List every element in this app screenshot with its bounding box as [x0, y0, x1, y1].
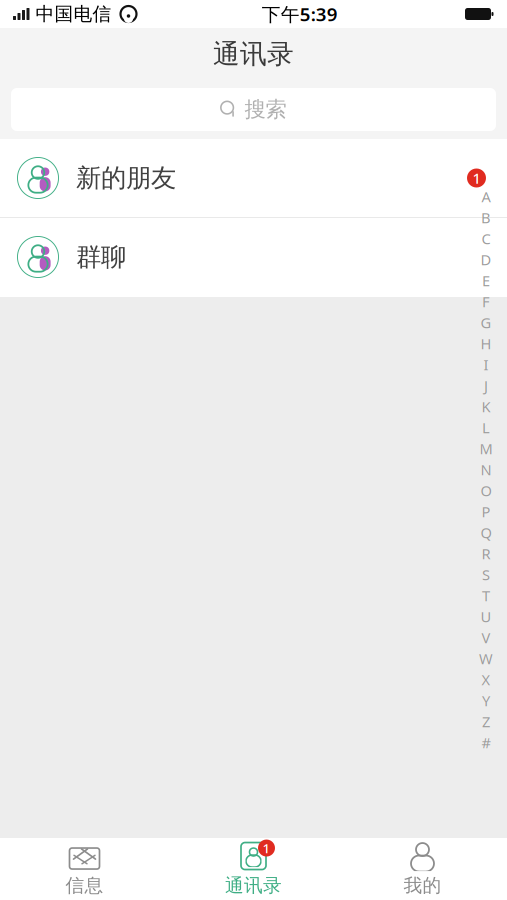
button[interactable]: 我的 [338, 839, 507, 899]
staticText: G [480, 313, 491, 332]
staticText: 群聊 [76, 241, 126, 272]
staticText: 1 [262, 839, 270, 857]
staticText: N [480, 460, 491, 479]
button[interactable]: 新的朋友 [0, 139, 507, 218]
staticText: R [481, 544, 490, 563]
staticText: Q [480, 523, 491, 542]
staticText: 搜索 [244, 96, 286, 123]
staticText: B [481, 208, 491, 227]
staticText: T [482, 586, 490, 605]
staticText: A [481, 187, 490, 206]
staticText: U [480, 607, 491, 626]
staticText: J [484, 376, 488, 395]
staticText: K [481, 397, 490, 416]
staticText: W [479, 649, 493, 668]
staticText: 通讯录 [225, 874, 282, 897]
staticText: F [482, 292, 490, 311]
staticText: D [480, 250, 491, 269]
staticText: L [482, 418, 490, 437]
staticText: 信息 [65, 874, 103, 897]
button[interactable]: 群聊 [0, 218, 507, 297]
button[interactable]: 1 [169, 839, 338, 899]
staticText: S [482, 565, 490, 584]
staticText: 新的朋友 [76, 162, 176, 193]
staticText: H [480, 334, 491, 353]
staticText: E [482, 271, 490, 290]
staticText: 中国电信 [35, 2, 111, 25]
staticText: P [481, 502, 490, 521]
button[interactable]: 信息 [0, 839, 169, 899]
staticText: 我的 [403, 874, 441, 897]
staticText: O [480, 481, 491, 500]
staticText: 通讯录 [213, 38, 294, 70]
staticText: C [481, 229, 490, 248]
staticText: V [481, 628, 490, 647]
staticText: M [479, 439, 492, 458]
staticText: X [481, 670, 490, 689]
staticText: 下午5:39 [262, 2, 338, 26]
staticText: 1 [472, 168, 480, 188]
staticText: Y [482, 691, 490, 710]
staticText: I [483, 355, 488, 374]
staticText: Z [482, 712, 490, 731]
staticText: # [481, 733, 490, 752]
